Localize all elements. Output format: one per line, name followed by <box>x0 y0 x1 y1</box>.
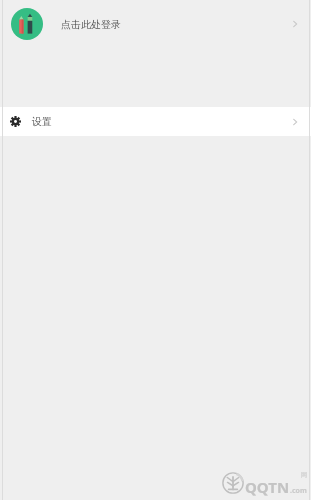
staticText: 点击此处登录 <box>61 18 289 31</box>
other: Settings <box>10 116 21 127</box>
staticText: 网 <box>301 471 307 479</box>
button[interactable]: 点击此处登录 <box>0 0 311 48</box>
staticText: QQTN <box>245 477 290 497</box>
staticText: .com <box>290 486 307 496</box>
button[interactable]: Settings <box>0 107 311 136</box>
staticText: 设置 <box>32 115 289 128</box>
